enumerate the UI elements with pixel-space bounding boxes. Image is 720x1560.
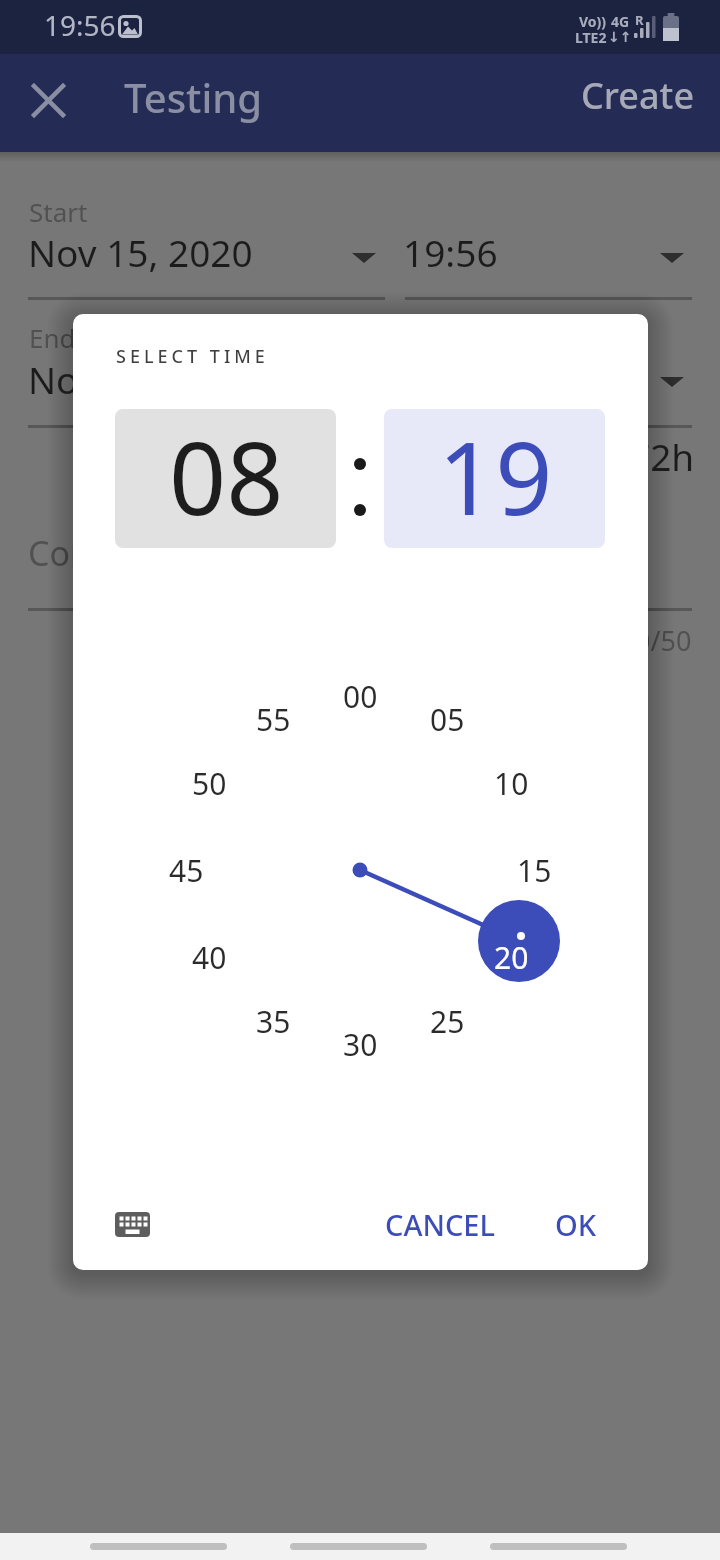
staticText: Testing: [124, 70, 263, 124]
staticText: 0/50: [635, 622, 692, 658]
staticText: 30: [343, 1024, 378, 1065]
staticText: ↓↑: [608, 29, 632, 45]
button[interactable]: [90, 1543, 227, 1550]
staticText: 00: [343, 676, 378, 717]
button[interactable]: Create: [455, 65, 695, 125]
staticText: 45: [169, 850, 204, 891]
staticText: Comment: [28, 530, 187, 576]
button[interactable]: 08: [115, 409, 336, 548]
button[interactable]: OK: [521, 1194, 631, 1254]
staticText: 10: [494, 763, 529, 804]
staticText: 50: [192, 763, 227, 804]
staticText: 15: [517, 850, 552, 891]
staticText: 08: [169, 409, 284, 544]
staticText: 19: [438, 409, 553, 544]
staticText: 19:56: [44, 6, 116, 44]
button[interactable]: 19: [384, 409, 605, 548]
staticText: Nov 15, 2020: [28, 354, 253, 404]
staticText: Create: [581, 71, 695, 120]
staticText: Nov 15, 2020: [28, 227, 253, 277]
staticText: LTE2: [575, 28, 607, 47]
staticText: End: [29, 320, 76, 355]
staticText: R: [635, 11, 644, 29]
staticText: 19:56: [403, 227, 498, 277]
button[interactable]: [115, 1212, 150, 1237]
button[interactable]: [290, 1543, 427, 1550]
staticText: 20: [494, 937, 529, 978]
staticText: Start: [29, 194, 88, 229]
staticText: OK: [555, 1205, 597, 1244]
staticText: 4G: [611, 12, 630, 31]
staticText: 40: [192, 937, 227, 978]
staticText: 55: [256, 699, 291, 740]
button[interactable]: [490, 1543, 627, 1550]
staticText: 35: [256, 1001, 291, 1042]
button[interactable]: CANCEL: [340, 1194, 540, 1254]
staticText: SELECT TIME: [116, 344, 269, 369]
staticText: CANCEL: [385, 1205, 495, 1244]
staticText: Vo)): [579, 12, 607, 31]
staticText: 25: [430, 1001, 465, 1042]
button[interactable]: [27, 79, 70, 122]
staticText: 05: [430, 699, 465, 740]
staticText: 72h: [629, 431, 695, 475]
